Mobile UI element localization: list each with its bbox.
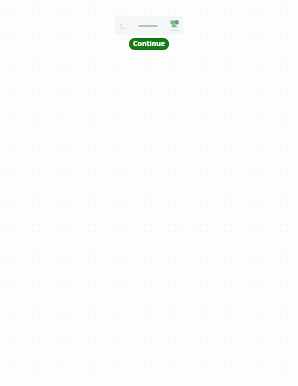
- button[interactable]: Continue: [129, 38, 169, 50]
- staticText: Continue: [133, 39, 165, 49]
- button[interactable]: Brand logo: [115, 16, 183, 35]
- other: Brand logo: [170, 20, 179, 29]
